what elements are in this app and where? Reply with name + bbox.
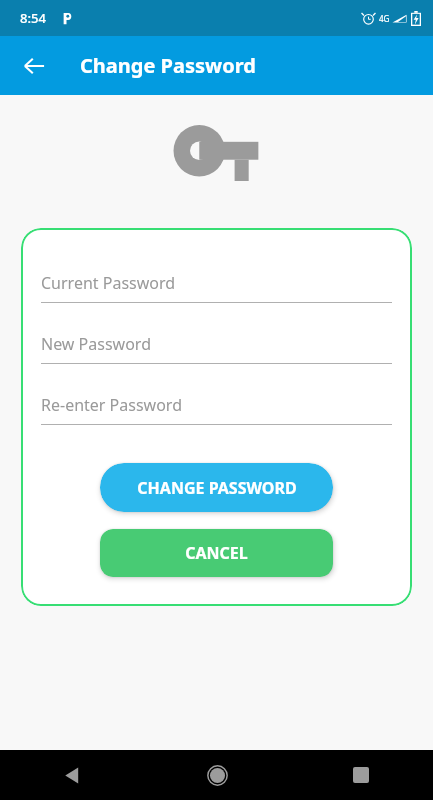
staticText: CANCEL <box>185 542 248 564</box>
button[interactable]: Back <box>10 42 58 90</box>
staticText: Current Password <box>41 272 176 294</box>
button[interactable]: Re-enter Password <box>41 394 392 425</box>
staticText: 4G <box>379 13 390 24</box>
staticText: Change Password <box>80 52 256 79</box>
button[interactable]: Current Password <box>41 272 392 303</box>
staticText: New Password <box>41 333 151 355</box>
staticText: 8:54 <box>20 9 46 27</box>
button[interactable]: Home <box>145 750 289 800</box>
button[interactable]: Recent apps <box>289 750 433 800</box>
button[interactable]: CHANGE PASSWORD <box>100 463 333 512</box>
button[interactable]: New Password <box>41 333 392 364</box>
staticText: CHANGE PASSWORD <box>137 477 297 499</box>
staticText: Re-enter Password <box>41 394 182 416</box>
button[interactable]: CANCEL <box>100 529 333 577</box>
button[interactable]: Back <box>0 750 145 800</box>
